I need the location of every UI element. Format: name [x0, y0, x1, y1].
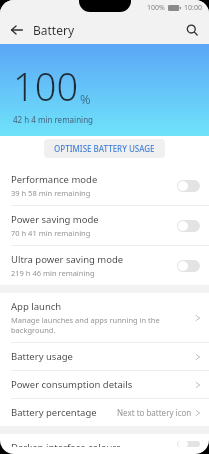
staticText: 100 [13, 60, 79, 112]
button[interactable]: Toggle [177, 260, 200, 272]
button[interactable]: Power saving mode [0, 206, 209, 245]
button[interactable]: Ultra power saving mode [0, 246, 209, 285]
staticText: Battery [33, 22, 75, 38]
staticText: Darken interface colours [11, 441, 121, 447]
staticText: 42 h 4 min remaining [13, 114, 94, 125]
button[interactable]: OPTIMISE BATTERY USAGE [44, 139, 165, 158]
button[interactable]: Darken interface colours [0, 434, 209, 454]
staticText: OPTIMISE BATTERY USAGE [54, 143, 155, 154]
button[interactable]: Battery percentage [0, 399, 209, 426]
staticText: Manage launches and apps running in the … [11, 315, 160, 335]
staticText: Battery percentage [11, 406, 97, 419]
staticText: Ultra power saving mode [11, 253, 124, 266]
button[interactable]: Power consumption details [0, 371, 209, 398]
button[interactable]: Toggle [177, 220, 200, 232]
button[interactable]: Search [181, 19, 203, 41]
staticText: 100% [147, 3, 165, 13]
staticText: 39 h 58 min remaining [11, 188, 91, 198]
staticText: Next to battery icon [117, 407, 192, 418]
staticText: 70 h 41 min remaining [11, 228, 91, 238]
staticText: Power consumption details [11, 378, 133, 391]
button[interactable]: Battery usage [0, 343, 209, 370]
staticText: Power saving mode [11, 213, 99, 226]
staticText: 10:00 [184, 3, 202, 13]
staticText: 219 h 46 min remaining [11, 268, 95, 278]
button[interactable]: App launch [0, 293, 209, 342]
button[interactable]: Back [6, 19, 28, 41]
staticText: Battery usage [11, 350, 73, 363]
staticText: App launch [11, 300, 62, 313]
button[interactable]: Performance mode [0, 166, 209, 205]
button[interactable]: Toggle [177, 441, 200, 447]
button[interactable]: Toggle [177, 180, 200, 192]
staticText: Performance mode [11, 173, 98, 186]
staticText: % [80, 90, 91, 108]
